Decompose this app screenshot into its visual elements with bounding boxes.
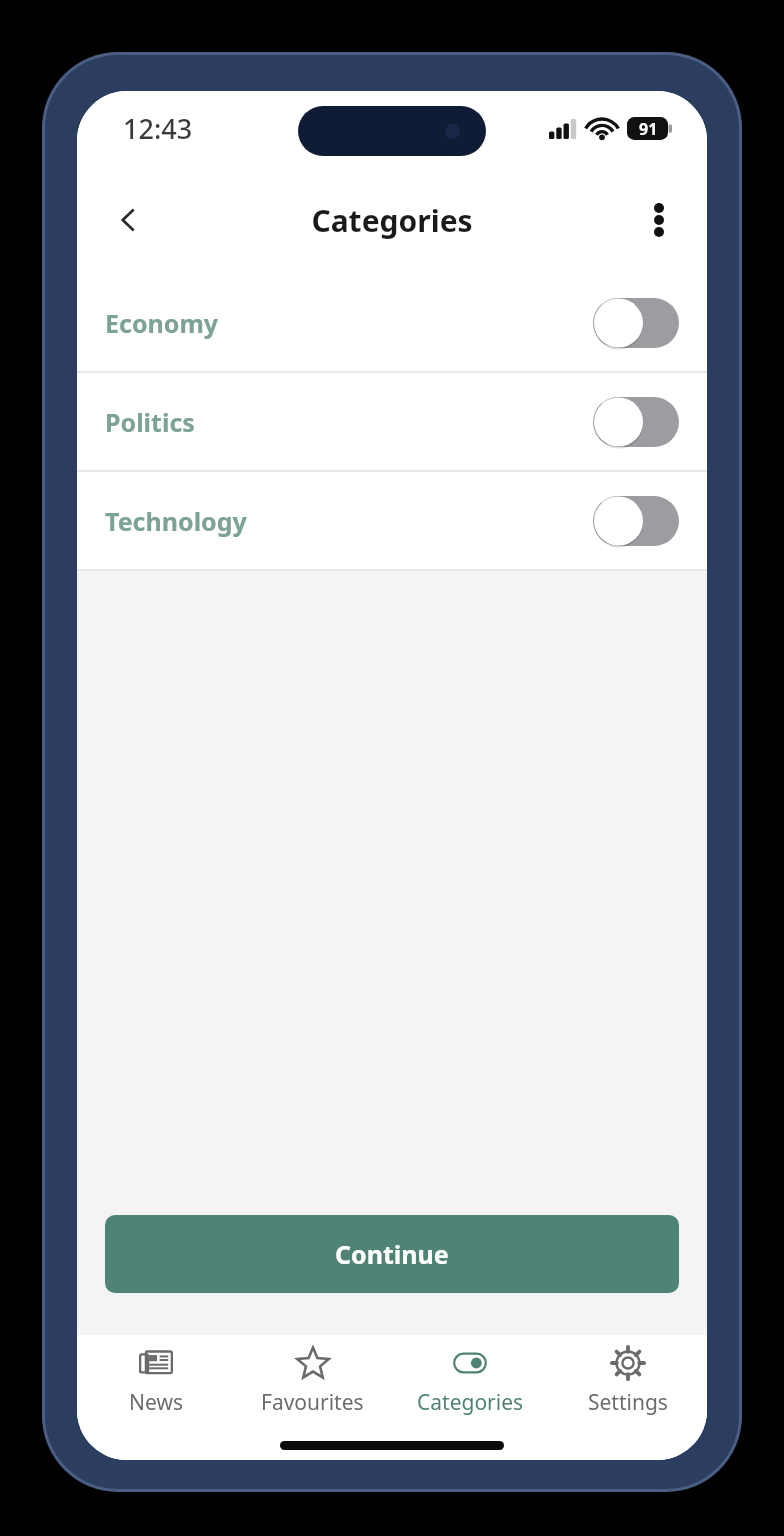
staticText: Economy — [105, 306, 219, 340]
button[interactable]: Toggle — [593, 298, 679, 348]
button[interactable]: Technology — [77, 472, 707, 569]
button[interactable]: Continue — [105, 1215, 679, 1293]
staticText: Continue — [335, 1237, 449, 1271]
staticText: 91 — [639, 118, 658, 140]
button[interactable]: Categories — [391, 1335, 549, 1430]
staticText: Categories — [417, 1388, 524, 1417]
button[interactable]: Politics — [77, 373, 707, 470]
staticText: Categories — [311, 200, 473, 241]
button[interactable]: Back — [101, 192, 157, 248]
staticText: Settings — [588, 1388, 668, 1417]
staticText: Favourites — [261, 1388, 364, 1417]
button[interactable]: More options — [631, 192, 687, 248]
staticText: News — [129, 1388, 183, 1417]
button[interactable]: Toggle — [593, 496, 679, 546]
button[interactable]: Toggle — [593, 397, 679, 447]
staticText: 12:43 — [123, 110, 193, 147]
button[interactable]: Settings — [549, 1335, 707, 1430]
button[interactable]: Favourites — [234, 1335, 391, 1430]
staticText: Politics — [105, 405, 195, 439]
button[interactable]: Economy — [77, 274, 707, 371]
staticText: Technology — [105, 504, 247, 538]
button[interactable]: News — [77, 1335, 234, 1430]
